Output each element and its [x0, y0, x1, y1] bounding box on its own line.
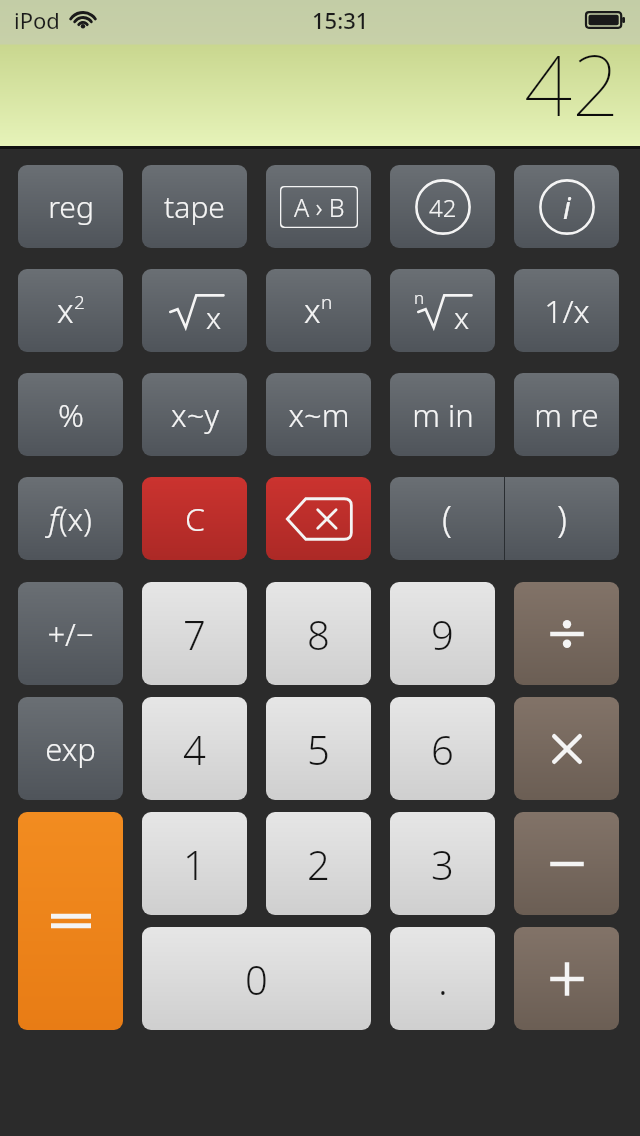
staticText: x — [304, 288, 321, 333]
staticText: 1/x — [544, 289, 590, 333]
staticText: 1 — [183, 837, 206, 891]
button[interactable]: Divide — [514, 582, 619, 685]
staticText: 2 — [307, 837, 330, 891]
button[interactable]: ) — [505, 477, 619, 560]
staticText: 8 — [307, 607, 330, 661]
staticText: x~m — [288, 394, 350, 436]
button[interactable]: Multiply — [514, 697, 619, 800]
staticText: tape — [164, 186, 225, 227]
button[interactable]: x — [18, 269, 123, 352]
button[interactable]: x~m — [266, 373, 371, 456]
staticText: ) — [557, 494, 567, 543]
button[interactable]: Backspace — [266, 477, 371, 560]
staticText: m re — [534, 394, 599, 436]
staticText: 6 — [431, 722, 454, 776]
button[interactable]: 0 — [142, 927, 371, 1030]
staticText: 5 — [307, 722, 330, 776]
button[interactable]: 4 — [142, 697, 247, 800]
button[interactable]: 3 — [390, 812, 495, 915]
staticText: x — [206, 297, 222, 338]
button[interactable]: A to B conversion — [266, 165, 371, 248]
staticText: 4 — [183, 722, 206, 776]
staticText: x — [57, 288, 74, 333]
button[interactable]: m in — [390, 373, 495, 456]
button[interactable]: tape — [142, 165, 247, 248]
button[interactable]: x~y — [142, 373, 247, 456]
staticText: f — [49, 497, 59, 541]
button[interactable]: m re — [514, 373, 619, 456]
staticText: 42 — [524, 26, 620, 140]
button[interactable]: Square root — [142, 269, 247, 352]
staticText: 9 — [431, 607, 454, 661]
staticText: 2 — [74, 289, 85, 315]
staticText: 7 — [183, 607, 206, 661]
staticText: x~y — [171, 394, 219, 436]
button[interactable]: Functions — [18, 477, 123, 560]
button[interactable]: 1 — [142, 812, 247, 915]
button[interactable]: 8 — [266, 582, 371, 685]
staticText: A › B — [294, 190, 345, 224]
staticText: n — [414, 286, 425, 309]
staticText: % — [58, 393, 84, 437]
staticText: 15:31 — [312, 5, 369, 35]
button[interactable]: Constant 42 — [390, 165, 495, 248]
staticText: 3 — [431, 837, 454, 891]
staticText: +/− — [47, 613, 94, 655]
button[interactable]: 1/x — [514, 269, 619, 352]
staticText: m in — [412, 394, 474, 436]
staticText: ( — [442, 494, 452, 543]
button[interactable]: Nth root — [390, 269, 495, 352]
button[interactable]: Subtract — [514, 812, 619, 915]
staticText: x — [454, 297, 470, 338]
staticText: i — [563, 187, 571, 228]
staticText: exp — [45, 728, 96, 770]
button[interactable]: Info — [514, 165, 619, 248]
button[interactable]: x — [266, 269, 371, 352]
button[interactable]: C — [142, 477, 247, 560]
staticText: iPod — [14, 5, 60, 35]
staticText: 0 — [245, 952, 268, 1006]
staticText: C — [185, 497, 205, 541]
button[interactable]: 5 — [266, 697, 371, 800]
staticText: (x) — [59, 498, 92, 540]
button[interactable]: Equals — [18, 812, 123, 1030]
button[interactable]: ( — [390, 477, 504, 560]
button[interactable]: 2 — [266, 812, 371, 915]
button[interactable]: 6 — [390, 697, 495, 800]
button[interactable]: reg — [18, 165, 123, 248]
button[interactable]: % — [18, 373, 123, 456]
staticText: reg — [48, 186, 94, 227]
staticText: n — [321, 289, 333, 315]
button[interactable]: . — [390, 927, 495, 1030]
button[interactable]: 7 — [142, 582, 247, 685]
button[interactable]: Add — [514, 927, 619, 1030]
staticText: . — [438, 952, 448, 1006]
button[interactable]: 9 — [390, 582, 495, 685]
staticText: 42 — [429, 191, 457, 224]
button[interactable]: exp — [18, 697, 123, 800]
button[interactable]: +/− — [18, 582, 123, 685]
